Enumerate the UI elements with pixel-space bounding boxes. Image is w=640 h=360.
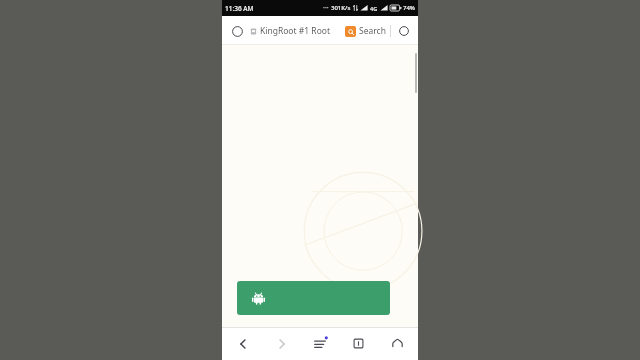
button[interactable]: Menu (303, 327, 337, 360)
button[interactable]: Back (226, 327, 260, 360)
button[interactable]: Tabs (341, 327, 375, 360)
staticText: 11:36 AM (225, 4, 254, 13)
button[interactable]: Forward (265, 327, 299, 360)
button[interactable]: Stop (394, 21, 414, 41)
staticText: 4G (370, 5, 378, 12)
button[interactable] (237, 281, 390, 315)
staticText: 74% (403, 4, 415, 12)
button[interactable]: Search (345, 25, 386, 37)
button[interactable]: Home (380, 327, 414, 360)
staticText: ••• (323, 5, 329, 12)
button[interactable]: KingRoot #1 Root And (250, 25, 343, 37)
staticText: Search (359, 25, 386, 37)
staticText: KingRoot #1 Root And (260, 25, 343, 37)
button[interactable]: Reload (226, 20, 248, 42)
staticText: 301K/s (331, 4, 351, 12)
